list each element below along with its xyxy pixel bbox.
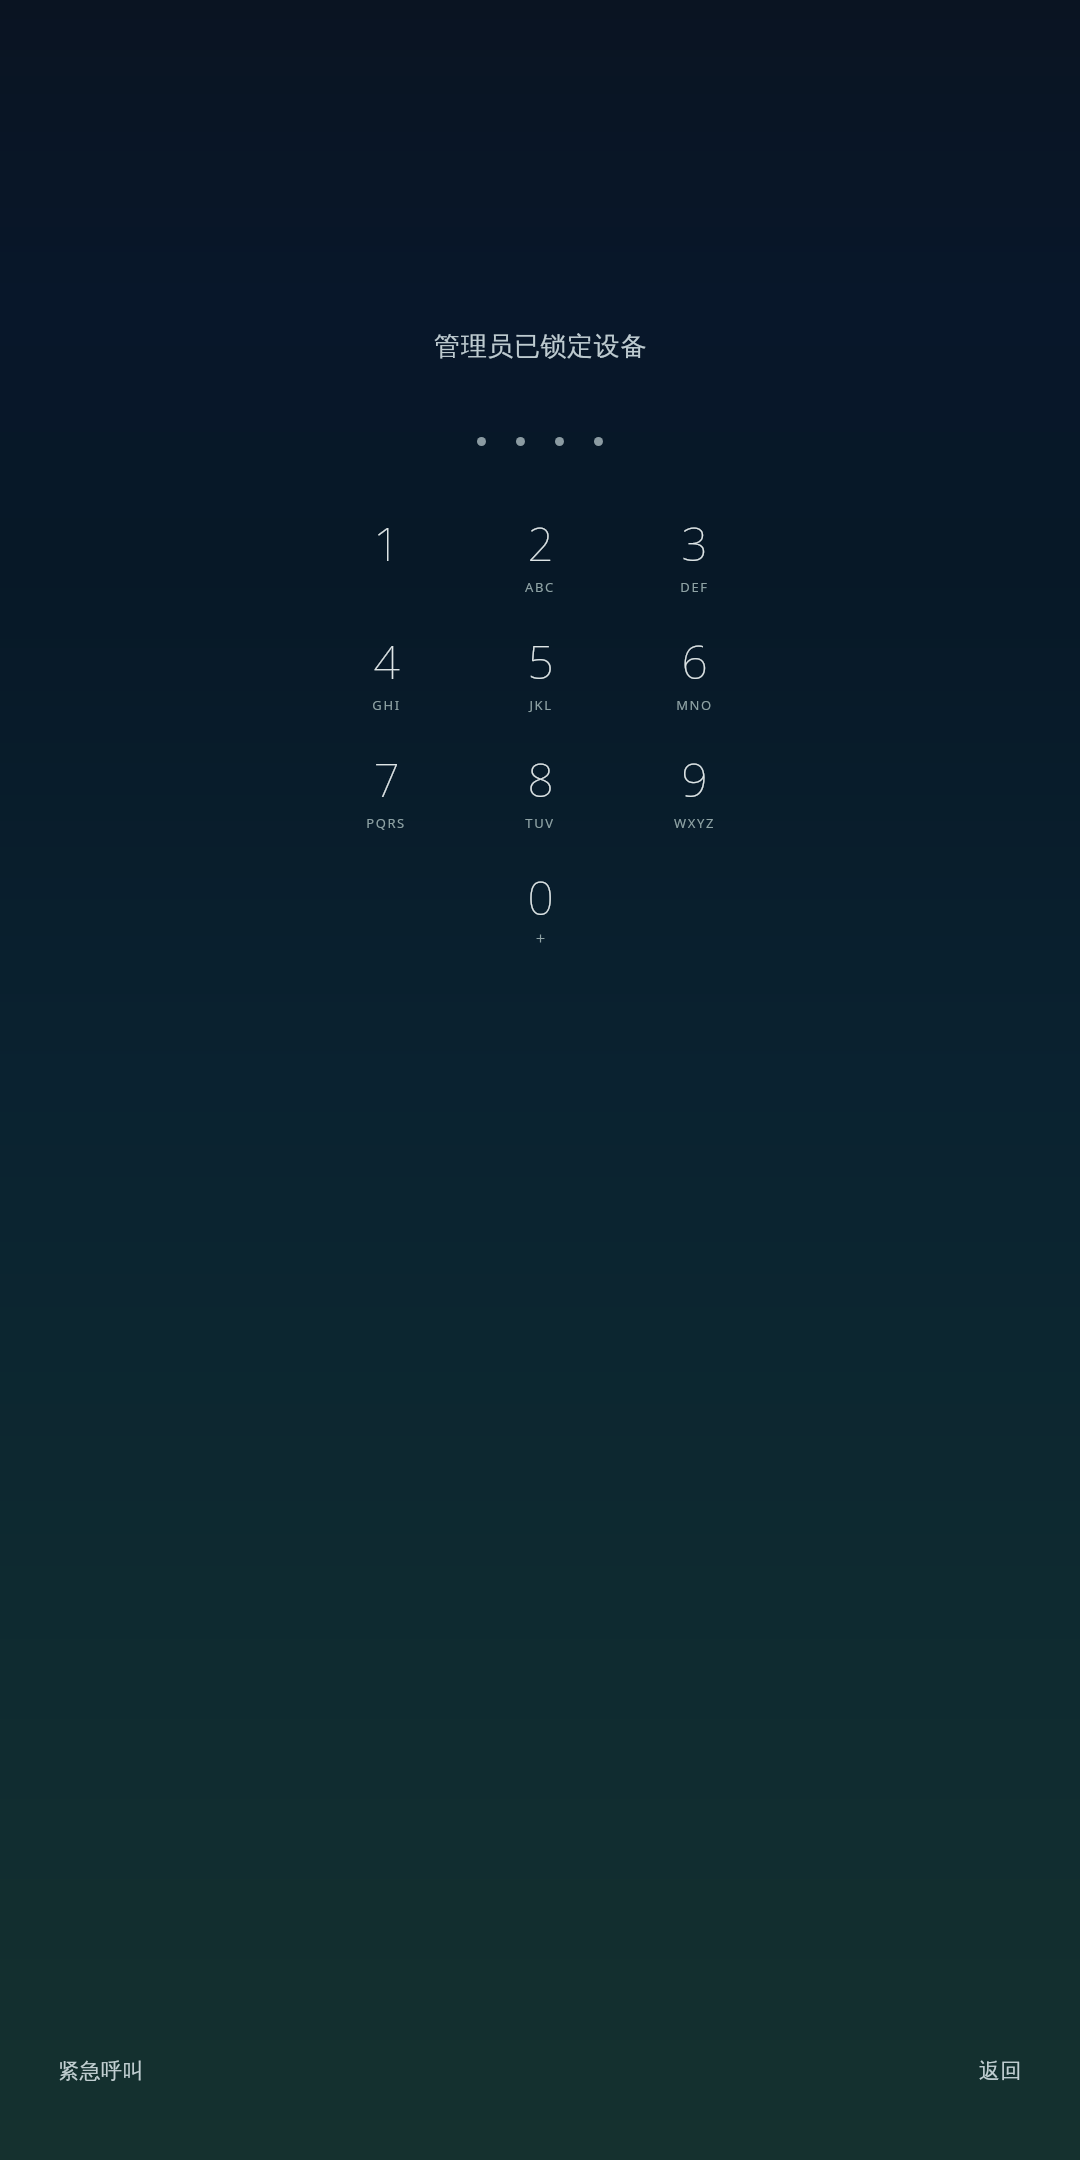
staticText: 管理员已锁定设备 [434, 330, 647, 363]
staticText: 8 [527, 748, 554, 811]
button[interactable]: 2 [489, 510, 591, 604]
staticText: 3 [681, 512, 708, 575]
button[interactable]: 1 [335, 510, 437, 604]
button[interactable]: 7 [335, 746, 437, 840]
staticText: 1 [373, 512, 400, 575]
staticText: PQRS [366, 814, 406, 832]
button[interactable]: 5 [489, 628, 591, 722]
staticText: 紧急呼叫 [58, 2058, 144, 2084]
staticText: ABC [525, 578, 555, 596]
staticText: 5 [527, 630, 554, 693]
staticText: 7 [373, 748, 400, 811]
staticText: 9 [681, 748, 708, 811]
button[interactable]: 3 [643, 510, 745, 604]
staticText: 4 [373, 630, 400, 693]
staticText: 返回 [979, 2058, 1022, 2084]
staticText: 0 [527, 866, 554, 929]
button[interactable]: 紧急呼叫 [40, 2044, 162, 2098]
button[interactable]: 返回 [961, 2044, 1040, 2098]
staticText: 2 [527, 512, 554, 575]
button[interactable]: 9 [643, 746, 745, 840]
button[interactable]: 6 [643, 628, 745, 722]
staticText: GHI [372, 696, 401, 714]
staticText: 6 [681, 630, 708, 693]
staticText: JKL [529, 696, 553, 714]
staticText: DEF [680, 578, 709, 596]
staticText: TUV [525, 814, 555, 832]
staticText: MNO [676, 696, 713, 714]
button[interactable]: 4 [335, 628, 437, 722]
button[interactable]: 0 [489, 864, 591, 958]
staticText: WXYZ [674, 814, 715, 832]
button[interactable]: 8 [489, 746, 591, 840]
